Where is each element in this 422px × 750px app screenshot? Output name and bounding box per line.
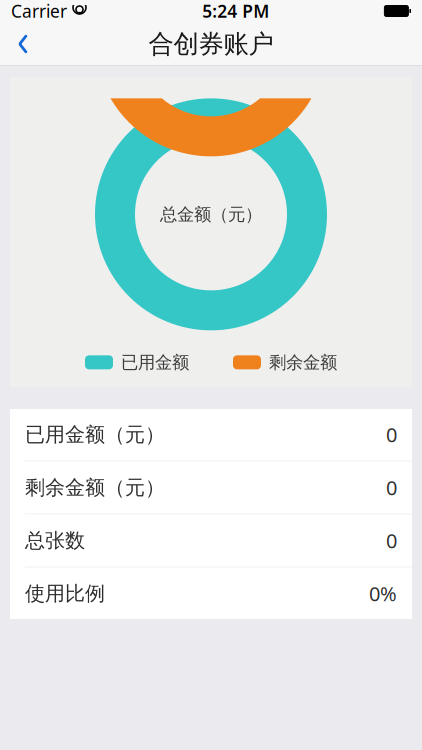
staticText: 0 xyxy=(386,527,397,554)
staticText: 剩余金额（元） xyxy=(25,475,165,500)
button[interactable]: 使用比例 xyxy=(10,567,412,620)
button[interactable]: 已用金额（元） xyxy=(10,408,412,461)
staticText: 已用金额（元） xyxy=(25,422,165,447)
staticText: 5:24 PM xyxy=(202,0,269,22)
staticText: Carrier xyxy=(11,0,67,22)
staticText: 总金额（元） xyxy=(160,204,262,225)
button[interactable]: Back xyxy=(0,22,46,66)
button[interactable]: 剩余金额（元） xyxy=(10,461,412,514)
button[interactable]: 总张数 xyxy=(10,514,412,567)
staticText: 总张数 xyxy=(25,528,85,553)
staticText: 剩余金额 xyxy=(269,352,337,373)
staticText: 0% xyxy=(369,580,397,607)
staticText: 使用比例 xyxy=(25,581,105,606)
staticText: 0 xyxy=(386,474,397,501)
staticText: 0 xyxy=(386,421,397,448)
staticText: 合创券账户 xyxy=(148,28,273,59)
staticText: 已用金额 xyxy=(121,352,189,373)
